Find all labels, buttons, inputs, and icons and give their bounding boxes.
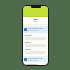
button[interactable]: Secondary item xyxy=(23,56,48,62)
button[interactable]: Selected item xyxy=(23,26,48,33)
button[interactable]: Phone mockup xyxy=(22,5,49,66)
button[interactable]: Form field xyxy=(25,49,46,54)
button[interactable]: Header xyxy=(23,6,48,17)
button[interactable]: Form field xyxy=(25,42,46,47)
button[interactable]: Form field xyxy=(25,35,46,40)
